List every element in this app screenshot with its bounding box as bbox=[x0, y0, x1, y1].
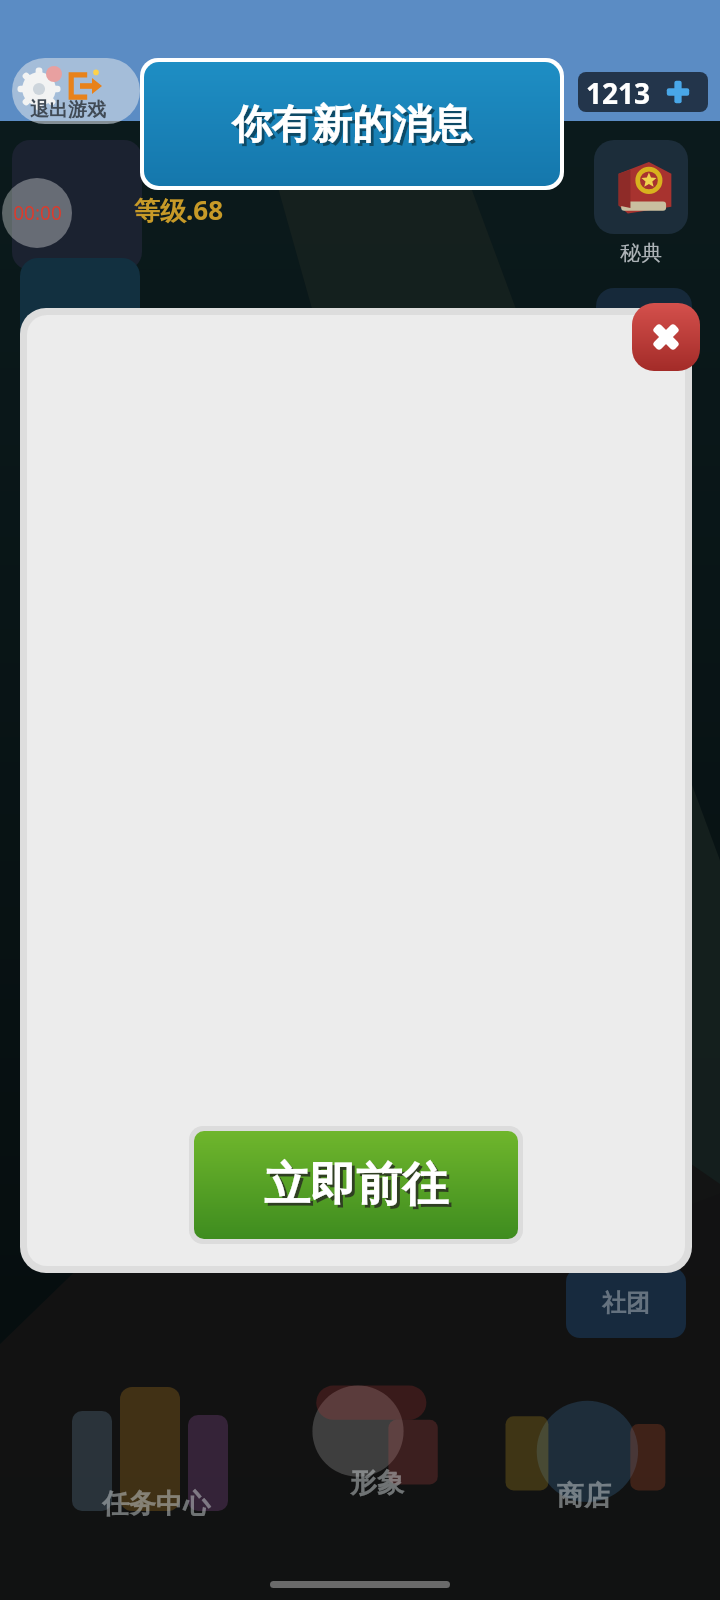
staticText: 任务中心 bbox=[102, 1487, 210, 1521]
staticText: 立即前往 bbox=[267, 1159, 451, 1217]
button[interactable]: 任务中心 bbox=[56, 1355, 256, 1555]
staticText: 社团 bbox=[602, 1288, 650, 1318]
button[interactable]: 商店 bbox=[486, 1350, 681, 1545]
staticText: 立即前往 bbox=[264, 1156, 448, 1214]
staticText: 商店 bbox=[557, 1479, 611, 1513]
button[interactable]: 秘典 bbox=[594, 140, 688, 266]
button[interactable]: 形象 bbox=[282, 1340, 472, 1530]
staticText: 退出游戏 bbox=[30, 98, 106, 122]
staticText: 等级.68 bbox=[134, 192, 224, 228]
button[interactable]: 你有新的消息 bbox=[144, 62, 560, 186]
button[interactable]: 1213 bbox=[578, 72, 708, 112]
staticText: 你有新的消息 bbox=[235, 102, 475, 152]
button[interactable]: 社团 bbox=[576, 1278, 676, 1328]
button[interactable]: 00:00 bbox=[2, 178, 72, 248]
staticText: 00:00 bbox=[13, 200, 62, 226]
button[interactable]: Close bbox=[632, 303, 700, 371]
staticText: 形象 bbox=[350, 1466, 404, 1500]
staticText: 1213 bbox=[586, 74, 651, 112]
button[interactable]: 退出游戏 bbox=[12, 58, 140, 124]
button[interactable]: 立即前往 bbox=[194, 1131, 518, 1239]
staticText: 你有新的消息 bbox=[232, 99, 472, 149]
staticText: 秘典 bbox=[620, 240, 662, 266]
